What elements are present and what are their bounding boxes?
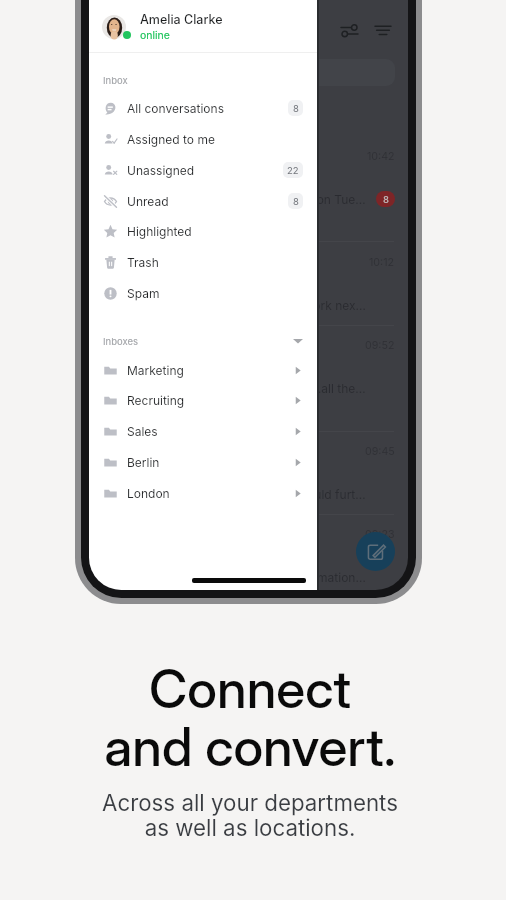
button[interactable]: Filter [334, 15, 364, 45]
button[interactable]: Marketing [89, 355, 317, 385]
staticText: Unassigned [127, 163, 195, 178]
staticText: 22 [287, 165, 299, 176]
button[interactable]: Berlin [89, 447, 317, 477]
button[interactable]: Amelia Clarke [89, 2, 317, 52]
button[interactable]: Highlighted [89, 216, 317, 246]
button[interactable] [89, 520, 408, 590]
staticText: 8 [293, 196, 299, 207]
staticText: Berlin [127, 455, 160, 470]
staticText: Trash [127, 255, 159, 270]
staticText: …all the… [311, 381, 366, 396]
staticText: Sales [127, 424, 158, 439]
button[interactable]: Assigned to me [89, 124, 317, 154]
staticText: Assigned to me [127, 132, 215, 147]
button[interactable] [89, 437, 408, 521]
staticText: All conversations [127, 101, 224, 116]
staticText: 10:12 [369, 256, 395, 269]
staticText: Highlighted [127, 224, 192, 239]
staticText: 09:23 [365, 528, 395, 541]
staticText: …uld furt… [304, 487, 366, 502]
staticText: Inbox [103, 75, 128, 86]
button[interactable]: London [89, 478, 317, 508]
staticText: London [127, 486, 170, 501]
button[interactable]: Sales [89, 416, 317, 446]
button[interactable] [89, 331, 408, 415]
staticText: Amelia Clarke [140, 12, 223, 27]
staticText: Unread [127, 194, 169, 209]
button[interactable]: Trash [89, 247, 317, 277]
staticText: Across all your departments as well as l… [102, 789, 398, 841]
button[interactable]: Spam [89, 278, 317, 308]
staticText: Recruiting [127, 393, 185, 408]
staticText: online [140, 29, 170, 42]
staticText: Spam [127, 286, 160, 301]
staticText: …l on Tue… [300, 192, 366, 207]
staticText: 8 [293, 103, 299, 114]
button[interactable]: New conversation [356, 532, 395, 571]
button[interactable]: Unread [89, 186, 317, 216]
button[interactable]: Unassigned [89, 155, 317, 185]
staticText: Inboxes [103, 336, 138, 347]
button[interactable]: All conversations [89, 93, 317, 123]
button[interactable] [89, 248, 408, 332]
staticText: …ork nex… [303, 298, 366, 313]
staticText: 09:45 [365, 445, 395, 458]
staticText: …rmation… [302, 570, 366, 585]
staticText: 8 [383, 194, 389, 205]
staticText: Connect and convert. [104, 657, 396, 778]
staticText: Marketing [127, 363, 184, 378]
button[interactable]: Recruiting [89, 385, 317, 415]
staticText: 09:52 [365, 339, 395, 352]
button[interactable]: Sort [368, 15, 398, 45]
button[interactable] [89, 142, 408, 226]
staticText: 10:42 [367, 150, 395, 163]
